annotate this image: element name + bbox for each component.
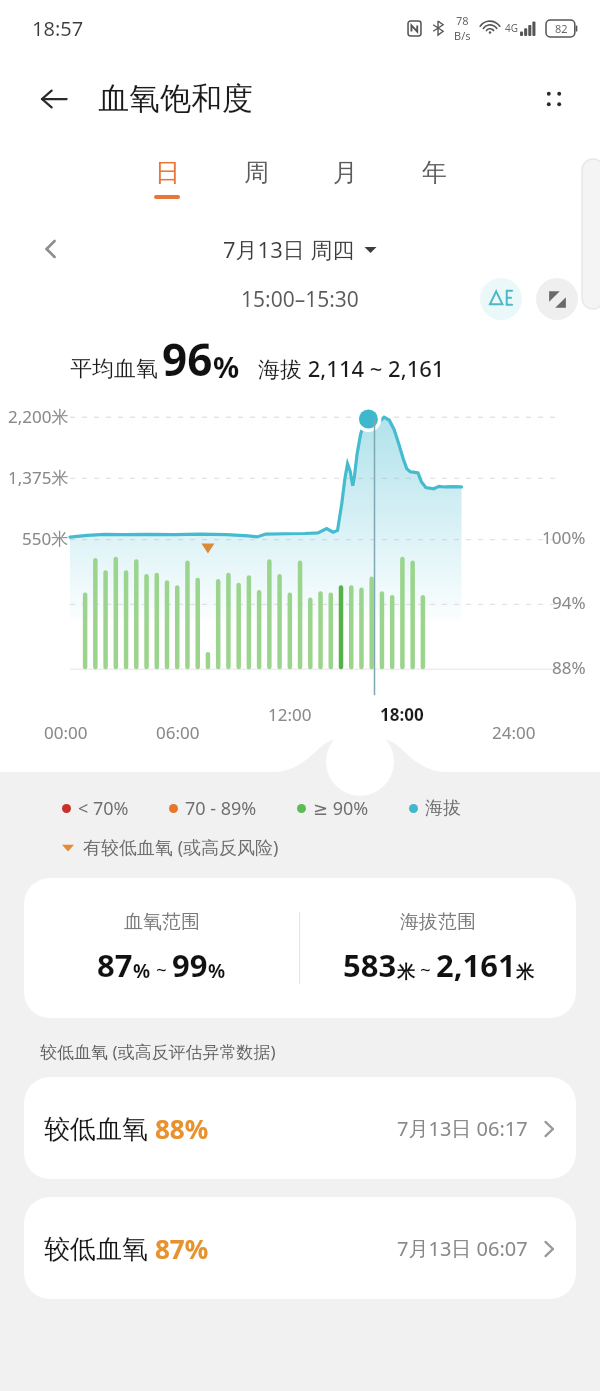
staticText: 血氧饱和度 — [98, 79, 253, 118]
staticText: 94% — [552, 591, 586, 614]
staticText: 日 — [155, 157, 180, 188]
button[interactable]: 周 — [236, 155, 277, 201]
button[interactable]: 日 — [146, 155, 188, 201]
staticText: 海拔 2,114 ~ 2,161 — [258, 353, 445, 383]
button[interactable]: 月 — [325, 155, 366, 201]
staticText: 海拔 — [425, 797, 461, 820]
staticText: 18:00 — [380, 703, 424, 726]
staticText: 00:00 — [44, 721, 88, 744]
button[interactable]: More options — [528, 73, 580, 125]
staticText: < 70% — [78, 796, 129, 821]
staticText: 7月13日 周四 — [223, 234, 355, 264]
staticText: ~ — [415, 957, 436, 983]
staticText: 100% — [542, 526, 586, 549]
button[interactable]: Back — [30, 75, 78, 123]
staticText: 82 — [555, 21, 568, 36]
staticText: 87 — [97, 944, 133, 986]
button[interactable]: 年 — [414, 155, 455, 201]
staticText: % — [133, 958, 151, 984]
staticText: 15:00–15:30 — [241, 285, 359, 314]
button[interactable]: Expand chart — [536, 278, 578, 320]
staticText: 88% — [552, 656, 586, 679]
staticText: 78 — [456, 13, 469, 28]
staticText: 06:00 — [156, 721, 200, 744]
staticText: 平均血氧 — [70, 355, 158, 383]
staticText: 年 — [422, 157, 447, 188]
staticText: 88% — [155, 1111, 209, 1146]
staticText: 4G — [505, 21, 518, 35]
staticText: 1,375米 — [8, 466, 69, 489]
staticText: 12:00 — [268, 703, 312, 726]
staticText: 较低血氧 — [44, 1230, 155, 1266]
staticText: 24:00 — [492, 721, 536, 744]
button[interactable]: AI analysis — [480, 278, 522, 320]
button[interactable]: 较低血氧 — [24, 1077, 576, 1179]
staticText: 血氧范围 — [124, 910, 200, 934]
staticText: 18:57 — [32, 15, 84, 42]
staticText: 583 — [343, 944, 397, 986]
button[interactable]: 血氧范围 — [24, 878, 576, 1018]
staticText: 米 — [516, 961, 534, 984]
staticText: 月 — [333, 157, 358, 188]
staticText: ≥ 90% — [313, 796, 369, 821]
staticText: 2,161 — [436, 944, 516, 986]
staticText: 有较低血氧 (或高反风险) — [83, 835, 279, 860]
staticText: B/s — [454, 28, 471, 43]
staticText: 米 — [397, 961, 415, 984]
staticText: 99 — [172, 944, 208, 986]
button[interactable]: 7月13日 周四 — [215, 230, 385, 268]
staticText: 87% — [155, 1231, 209, 1266]
staticText: ~ — [151, 957, 172, 983]
staticText: % — [213, 347, 240, 386]
staticText: 550米 — [22, 527, 69, 550]
staticText: 7月13日 06:07 — [397, 1235, 528, 1262]
staticText: 较低血氧 (或高反评估异常数据) — [40, 1040, 276, 1063]
staticText: 周 — [244, 157, 269, 188]
staticText: 70 - 89% — [185, 796, 257, 821]
staticText: 96 — [162, 329, 213, 389]
staticText: 2,200米 — [8, 405, 69, 428]
button[interactable]: Previous day — [30, 228, 72, 270]
staticText: 海拔范围 — [400, 910, 476, 934]
staticText: 7月13日 06:17 — [397, 1115, 528, 1142]
button[interactable]: 较低血氧 — [24, 1197, 576, 1299]
staticText: % — [208, 958, 226, 984]
staticText: 较低血氧 — [44, 1110, 155, 1146]
